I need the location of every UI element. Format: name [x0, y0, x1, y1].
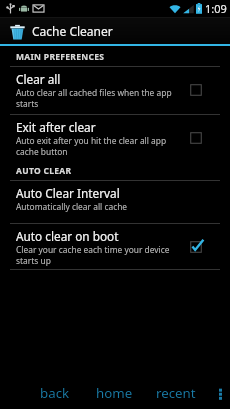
button[interactable]: More options [213, 386, 227, 400]
staticText: Auto clear all cached files when the app… [16, 87, 185, 109]
button[interactable]: Unchecked [188, 130, 204, 146]
staticText: Auto clear on boot [16, 228, 119, 244]
staticText: Clear all [16, 71, 61, 87]
button[interactable]: back [40, 384, 70, 402]
button[interactable]: Auto clear on boot [0, 224, 230, 270]
button[interactable]: recent [156, 384, 196, 402]
staticText: AUTO CLEAR [16, 165, 72, 177]
staticText: Clear your cache each time your device s… [16, 244, 185, 266]
button[interactable]: Auto Clear Interval [0, 181, 230, 224]
staticText: MAIN PREFERENCES [16, 51, 105, 63]
button[interactable]: Unchecked [188, 82, 204, 98]
button[interactable]: Clear all [0, 67, 230, 115]
button[interactable]: home [96, 384, 133, 402]
staticText: recent [156, 384, 196, 402]
staticText: Exit after clear [16, 119, 96, 135]
staticText: Automatically clear all cache [16, 201, 128, 212]
button[interactable]: Exit after clear [0, 115, 230, 163]
staticText: 1:09 [205, 1, 227, 16]
button[interactable]: Checked [188, 239, 204, 255]
staticText: Cache Cleaner [32, 23, 113, 39]
staticText: Auto exit after you hit the clear all ap… [16, 135, 185, 157]
staticText: home [96, 384, 133, 402]
staticText: Auto Clear Interval [16, 185, 120, 201]
staticText: back [40, 384, 70, 402]
